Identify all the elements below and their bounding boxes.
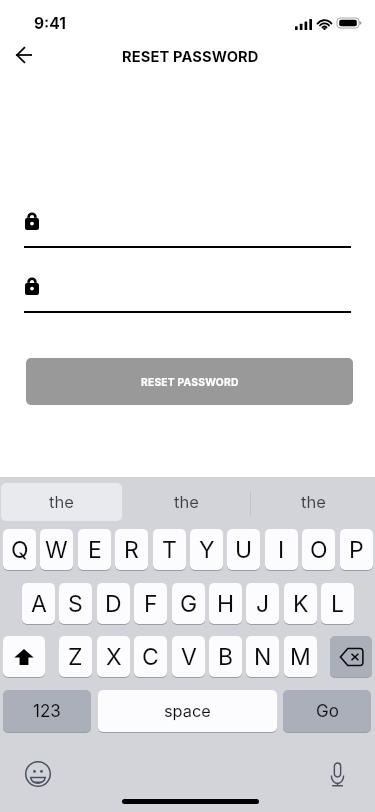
staticText: space: [164, 701, 211, 721]
staticText: C: [142, 643, 159, 671]
staticText: H: [217, 590, 235, 618]
staticText: G: [180, 590, 198, 618]
staticText: V: [181, 643, 197, 671]
staticText: U: [235, 536, 253, 564]
button[interactable]: K: [284, 583, 317, 624]
button[interactable]: H: [209, 583, 242, 624]
button[interactable]: S: [59, 583, 92, 624]
button[interactable]: T: [153, 529, 186, 570]
button[interactable]: Dictate: [330, 762, 345, 787]
button[interactable]: Shift: [3, 636, 45, 677]
staticText: K: [293, 590, 309, 618]
staticText: RESET PASSWORD: [141, 376, 239, 388]
button[interactable]: Backspace: [330, 636, 372, 677]
staticText: I: [278, 536, 285, 564]
button[interactable]: Back: [2, 33, 46, 77]
button[interactable]: D: [97, 583, 130, 624]
staticText: W: [45, 536, 68, 564]
staticText: Q: [11, 536, 29, 564]
button[interactable]: Q: [3, 529, 36, 570]
button[interactable]: O: [302, 529, 335, 570]
staticText: X: [106, 643, 122, 671]
button[interactable]: N: [246, 636, 279, 677]
staticText: A: [31, 590, 47, 618]
staticText: N: [254, 643, 272, 671]
staticText: 9:41: [34, 14, 66, 33]
button[interactable]: X: [97, 636, 130, 677]
button[interactable]: the: [253, 483, 374, 521]
button[interactable]: C: [134, 636, 167, 677]
staticText: the: [49, 492, 74, 512]
button[interactable]: V: [172, 636, 205, 677]
staticText: D: [105, 590, 122, 618]
button[interactable]: B: [209, 636, 242, 677]
button[interactable]: P: [340, 529, 373, 570]
button[interactable]: R: [115, 529, 148, 570]
button[interactable]: Y: [190, 529, 223, 570]
staticText: B: [218, 643, 234, 671]
staticText: Y: [199, 536, 215, 564]
staticText: T: [162, 536, 177, 564]
staticText: F: [144, 590, 158, 618]
button[interactable]: RESET PASSWORD: [26, 358, 353, 405]
button[interactable]: J: [246, 583, 279, 624]
button[interactable]: U: [227, 529, 260, 570]
button[interactable]: E: [78, 529, 111, 570]
button[interactable]: M: [284, 636, 317, 677]
staticText: M: [290, 643, 311, 671]
staticText: E: [88, 536, 102, 564]
button[interactable]: A: [22, 583, 55, 624]
button[interactable]: the: [1, 483, 122, 521]
button[interactable]: G: [172, 583, 205, 624]
staticText: RESET PASSWORD: [122, 48, 259, 66]
button[interactable]: space: [98, 690, 277, 732]
button[interactable]: the: [126, 483, 247, 521]
staticText: the: [301, 492, 326, 512]
button[interactable]: 123: [3, 690, 91, 732]
button[interactable]: Z: [59, 636, 92, 677]
staticText: P: [349, 536, 364, 564]
staticText: S: [68, 590, 83, 618]
staticText: 123: [33, 701, 61, 722]
button[interactable]: Go: [283, 690, 371, 732]
staticText: Z: [68, 643, 83, 671]
button[interactable]: L: [321, 583, 354, 624]
button[interactable]: F: [134, 583, 167, 624]
staticText: O: [310, 536, 328, 564]
staticText: Go: [316, 701, 339, 722]
staticText: the: [174, 492, 199, 512]
button[interactable]: I: [265, 529, 298, 570]
button[interactable]: W: [40, 529, 73, 570]
staticText: R: [124, 536, 139, 564]
staticText: J: [256, 590, 270, 618]
button[interactable]: Emoji keyboard: [25, 761, 51, 787]
staticText: L: [331, 590, 345, 618]
